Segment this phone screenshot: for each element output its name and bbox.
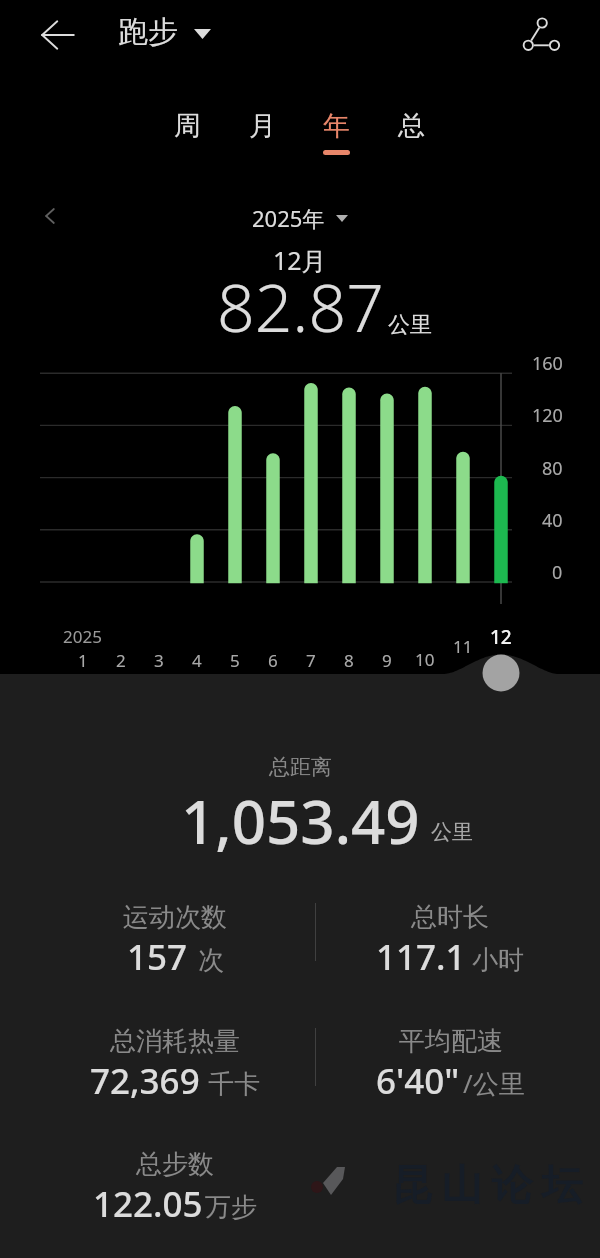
staticText: 6 [268, 649, 278, 672]
staticText: 157 [127, 933, 188, 978]
staticText: 平均配速 [399, 1025, 503, 1058]
staticText: 跑步 [118, 13, 178, 51]
staticText: 117.1 [376, 933, 466, 978]
staticText: 昆山论坛 [387, 1160, 587, 1212]
staticText: 公里 [388, 311, 432, 339]
button[interactable]: 跑步 [110, 8, 220, 56]
staticText: 160 [532, 351, 563, 376]
staticText: 周 [174, 109, 201, 143]
button[interactable]: 平均配速 [305, 1025, 595, 1103]
staticText: 2025年 [252, 203, 325, 233]
staticText: 2025 [63, 625, 102, 648]
staticText: 40 [542, 508, 563, 533]
staticText: 总时长 [411, 901, 489, 934]
staticText: 11 [453, 635, 473, 658]
staticText: 总 [398, 109, 425, 143]
staticText: 公里 [431, 819, 473, 845]
staticText: 8 [344, 649, 354, 672]
staticText: 千卡 [208, 1068, 260, 1101]
button[interactable]: Share [517, 4, 565, 52]
staticText: 年 [323, 109, 350, 143]
button[interactable]: Previous year [30, 196, 70, 236]
staticText: 万步 [205, 1191, 257, 1224]
staticText: 总消耗热量 [110, 1025, 240, 1058]
button[interactable]: 周 [157, 109, 217, 167]
staticText: 72,369 [90, 1057, 200, 1102]
staticText: 1,053.49 [181, 780, 420, 862]
button[interactable]: 总消耗热量 [30, 1025, 320, 1103]
staticText: 9 [382, 649, 392, 672]
button[interactable]: 2025年 [252, 203, 348, 233]
staticText: 总步数 [136, 1148, 214, 1181]
staticText: 4 [192, 649, 202, 672]
staticText: 总距离 [269, 754, 332, 780]
staticText: 82.87 [217, 261, 384, 351]
staticText: 12 [490, 624, 512, 650]
staticText: 122.05 [93, 1180, 203, 1225]
staticText: 次 [198, 944, 224, 977]
button[interactable]: 运动次数 [30, 901, 320, 979]
staticText: 6'40" [376, 1057, 460, 1102]
staticText: 120 [532, 403, 563, 428]
staticText: 5 [230, 649, 240, 672]
button[interactable]: 总 [381, 109, 441, 167]
staticText: 运动次数 [123, 901, 227, 934]
button[interactable]: 年 [306, 109, 366, 167]
staticText: 1 [78, 649, 88, 672]
staticText: 月 [249, 109, 276, 143]
staticText: 2 [116, 649, 126, 672]
button[interactable]: 总步数 [30, 1148, 320, 1226]
button[interactable]: 总时长 [305, 901, 595, 979]
staticText: 10 [415, 648, 435, 671]
button[interactable]: 月 [232, 109, 292, 167]
staticText: 80 [542, 456, 563, 481]
button[interactable]: Back [36, 13, 80, 57]
staticText: 12月 [273, 243, 327, 277]
staticText: 3 [154, 649, 164, 672]
staticText: /公里 [463, 1065, 525, 1101]
staticText: 7 [306, 649, 316, 672]
staticText: 0 [552, 560, 563, 585]
staticText: 小时 [472, 944, 524, 977]
